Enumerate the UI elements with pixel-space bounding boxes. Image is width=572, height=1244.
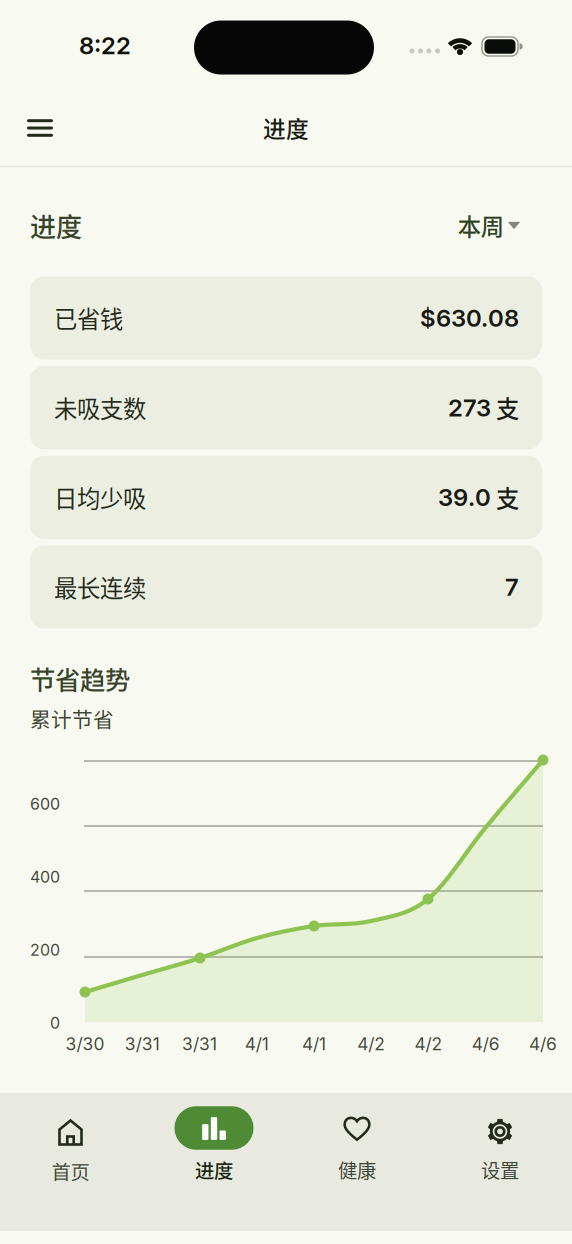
staticText: 支 (496, 480, 519, 514)
staticText: 节省趋势 (30, 660, 130, 697)
staticText: 400 (30, 868, 60, 886)
staticText: 已省钱 (54, 301, 123, 335)
staticText: $630.08 (420, 304, 519, 332)
staticText: 7 (505, 573, 519, 601)
staticText: 4/2 (357, 1034, 385, 1054)
staticText: 3/30 (65, 1034, 104, 1054)
button[interactable]: 设置 (481, 1119, 519, 1183)
staticText: 4/6 (529, 1034, 557, 1054)
button[interactable] (18, 106, 62, 150)
staticText: 进度 (263, 111, 309, 144)
staticText: 4/2 (414, 1034, 442, 1054)
staticText: 日均少吸 (54, 480, 146, 514)
staticText: 3/31 (182, 1034, 217, 1054)
button[interactable]: 进度 (174, 1106, 253, 1184)
staticText: 8:22 (79, 31, 131, 60)
staticText: 支 (496, 391, 519, 425)
staticText: 4/1 (302, 1034, 326, 1054)
staticText: 本周 (458, 209, 504, 242)
staticText: 首页 (51, 1157, 89, 1185)
staticText: 4/1 (245, 1034, 269, 1054)
button[interactable]: 首页 (51, 1119, 89, 1185)
staticText: 进度 (30, 207, 82, 244)
staticText: 累计节省 (30, 703, 114, 733)
staticText: 600 (30, 795, 60, 813)
staticText: 最长连续 (54, 570, 146, 604)
staticText: 0 (50, 1014, 60, 1032)
button[interactable]: 本周 (458, 209, 520, 242)
staticText: 273 (448, 393, 491, 422)
staticText: 200 (30, 941, 60, 959)
staticText: 3/31 (125, 1034, 160, 1054)
button[interactable]: 健康 (338, 1117, 376, 1183)
staticText: 未吸支数 (54, 391, 146, 425)
staticText: 进度 (195, 1156, 233, 1184)
staticText: 39.0 (438, 483, 491, 511)
staticText: 健康 (338, 1155, 376, 1183)
staticText: 设置 (481, 1155, 519, 1183)
staticText: 4/6 (472, 1034, 500, 1054)
